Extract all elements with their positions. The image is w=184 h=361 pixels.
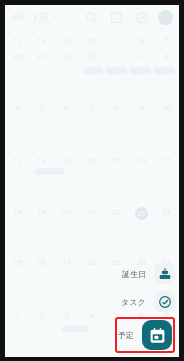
staticText: 23 bbox=[137, 209, 146, 219]
staticText: 17 bbox=[162, 155, 171, 165]
staticText: 31 bbox=[162, 257, 171, 267]
staticText: 1 bbox=[114, 51, 119, 61]
staticText: 予定 bbox=[118, 330, 134, 340]
staticText: 2 bbox=[39, 310, 44, 320]
staticText: 13 bbox=[62, 155, 71, 165]
staticText: 25 bbox=[13, 257, 22, 267]
staticText: 3 bbox=[64, 310, 69, 320]
staticText: 3 bbox=[164, 51, 169, 61]
staticText: 7 bbox=[164, 310, 169, 320]
staticText: 4 bbox=[89, 310, 94, 320]
staticText: 11 bbox=[13, 155, 22, 165]
staticText: 12 bbox=[37, 35, 46, 45]
staticText: 1 bbox=[15, 310, 20, 320]
staticText: タスク bbox=[121, 297, 146, 307]
staticText: 12 bbox=[37, 155, 46, 165]
staticText: 6 bbox=[139, 310, 144, 320]
staticText: 23 bbox=[87, 51, 96, 61]
staticText: 19 bbox=[37, 207, 46, 217]
other: タスクを追加 bbox=[154, 291, 175, 312]
staticText: 誕生日 bbox=[122, 269, 146, 279]
staticText: 29 bbox=[112, 257, 121, 267]
staticText: 4 bbox=[15, 102, 20, 112]
staticText: 22 bbox=[62, 51, 71, 61]
button[interactable]: タスク bbox=[121, 290, 175, 313]
staticText: 7 bbox=[164, 35, 169, 45]
staticText: 27 bbox=[62, 257, 71, 267]
staticText: 8 bbox=[114, 102, 119, 112]
staticText: 20 bbox=[62, 207, 71, 217]
other: 誕生日を追加 bbox=[154, 263, 175, 284]
staticText: 6 bbox=[64, 102, 69, 112]
staticText: 30 bbox=[137, 257, 146, 267]
staticText: 20 bbox=[13, 51, 22, 61]
staticText: 1月 bbox=[32, 10, 50, 25]
staticText: 5 bbox=[114, 310, 119, 320]
staticText: 26 bbox=[37, 257, 46, 267]
staticText: 7 bbox=[89, 102, 94, 112]
staticText: 14 bbox=[87, 155, 96, 165]
other: 予定を追加 bbox=[142, 320, 172, 350]
staticText: 6 bbox=[139, 35, 144, 45]
staticText: 21 bbox=[37, 51, 46, 61]
staticText: 2 bbox=[139, 51, 144, 61]
staticText: 14 bbox=[87, 35, 96, 45]
staticText: 11 bbox=[13, 35, 22, 45]
staticText: 18 bbox=[13, 207, 22, 217]
staticText: 22 bbox=[112, 207, 121, 217]
staticText: 15 bbox=[112, 155, 121, 165]
staticText: 1 bbox=[114, 35, 119, 45]
staticText: 5 bbox=[39, 102, 44, 112]
button[interactable]: 予定 bbox=[118, 320, 172, 350]
staticText: 28 bbox=[87, 257, 96, 267]
staticText: 13 bbox=[62, 35, 71, 45]
staticText: 24 bbox=[162, 207, 171, 217]
staticText: 16 bbox=[137, 155, 146, 165]
button[interactable]: 誕生日 bbox=[122, 262, 175, 285]
staticText: 10 bbox=[162, 102, 171, 112]
staticText: 9 bbox=[139, 102, 144, 112]
staticText: 21 bbox=[87, 207, 96, 217]
